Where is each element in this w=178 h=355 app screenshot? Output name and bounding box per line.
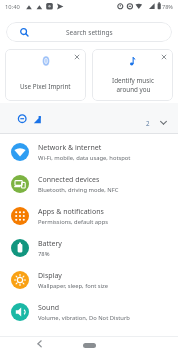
staticText: Bluetooth, driving mode, NFC [38, 186, 119, 194]
staticText: Sound [38, 303, 60, 313]
button[interactable]: Battery [0, 232, 178, 264]
button[interactable]: Apps & notifications [0, 200, 178, 232]
staticText: Wi-Fi, mobile, data usage, hotspot [38, 154, 131, 162]
staticText: Connected devices [38, 175, 100, 185]
staticText: Apps & notifications [38, 207, 104, 217]
staticText: 2 [146, 119, 150, 127]
button[interactable] [74, 54, 80, 60]
button[interactable]: Use Pixel Imprint [5, 49, 86, 101]
staticText: Use Pixel Imprint [20, 82, 71, 91]
staticText: Search settings [66, 28, 113, 37]
button[interactable]: Search settings [6, 22, 172, 42]
button[interactable]: Identify music [92, 49, 173, 101]
button[interactable]: Connected devices [0, 168, 178, 200]
button[interactable]: 2 [0, 103, 178, 134]
button[interactable]: Sound [0, 296, 178, 328]
staticText: Network & internet [38, 143, 102, 153]
staticText: Identify music [112, 76, 154, 85]
staticText: around you [116, 85, 151, 94]
staticText: 78% [38, 250, 50, 258]
button[interactable]: Network & internet [0, 136, 178, 168]
button[interactable] [83, 343, 96, 348]
staticText: Wallpaper, sleep, font size [38, 282, 109, 290]
staticText: 78% [162, 3, 173, 10]
staticText: Permissions, default apps [38, 218, 108, 226]
button[interactable] [161, 54, 167, 60]
staticText: 10:40 [5, 3, 20, 11]
button[interactable]: Display [0, 264, 178, 296]
staticText: Battery [38, 239, 62, 249]
staticText: Display [38, 271, 62, 281]
button[interactable] [36, 340, 44, 348]
staticText: Volume, vibration, Do Not Disturb [38, 314, 130, 322]
